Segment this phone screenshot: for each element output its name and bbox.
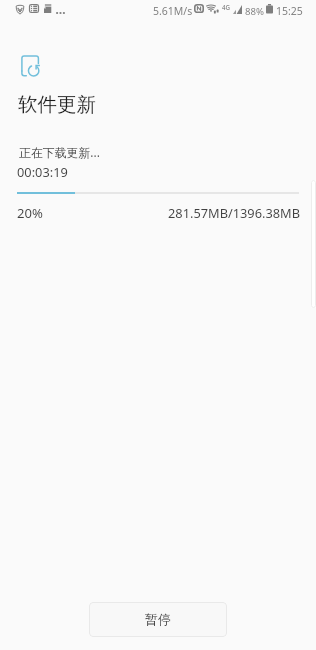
staticText: 20% <box>17 204 43 222</box>
staticText: 281.57MB/1396.38MB <box>168 204 300 221</box>
staticText: 4G <box>222 3 231 11</box>
staticText: 5.61M/s <box>153 4 193 18</box>
staticText: 暂停 <box>145 611 171 627</box>
staticText: 正在下载更新... <box>19 144 100 160</box>
staticText: 88% <box>245 5 264 18</box>
button[interactable]: 暂停 <box>89 602 227 637</box>
staticText: 15:25 <box>276 4 303 18</box>
staticText: 软件更新 <box>18 92 96 117</box>
staticText: 00:03:19 <box>17 163 68 180</box>
